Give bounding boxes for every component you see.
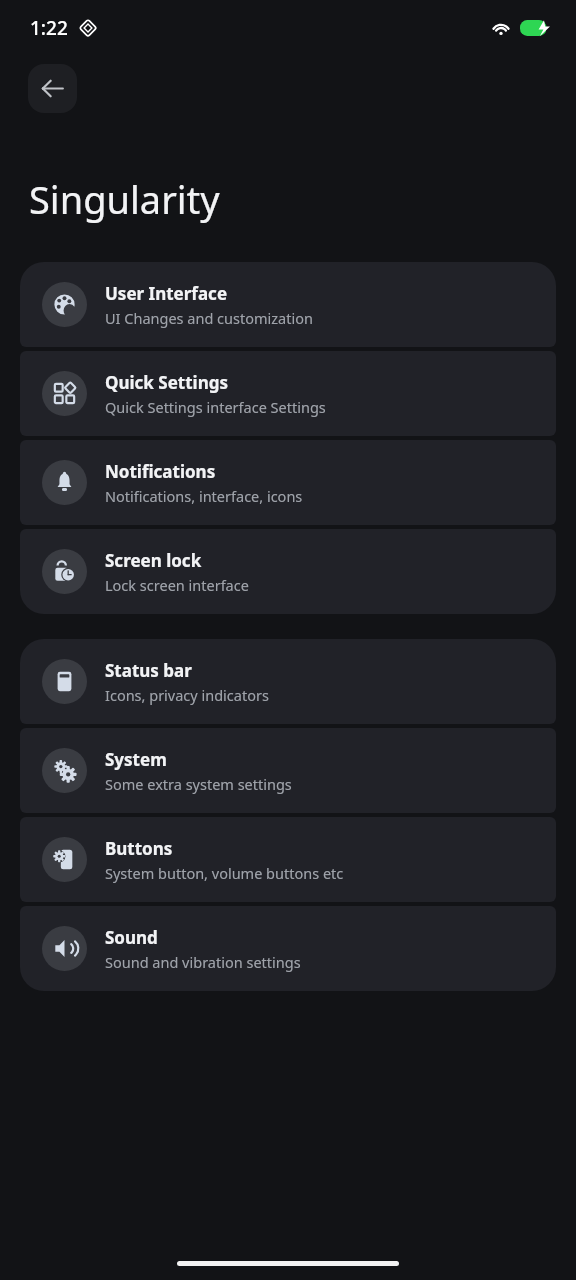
button[interactable]: Buttons bbox=[20, 817, 556, 902]
button[interactable]: System bbox=[20, 728, 556, 813]
staticText: Icons, privacy indicators bbox=[105, 685, 269, 705]
staticText: User Interface bbox=[105, 282, 228, 305]
staticText: Singularity bbox=[29, 173, 220, 225]
button[interactable]: User Interface bbox=[20, 262, 556, 347]
staticText: Notifications bbox=[105, 460, 216, 483]
staticText: Sound bbox=[105, 926, 158, 949]
button[interactable]: Status bar bbox=[20, 639, 556, 724]
staticText: Screen lock bbox=[105, 549, 202, 572]
staticText: Sound and vibration settings bbox=[105, 952, 301, 972]
button[interactable]: Screen lock bbox=[20, 529, 556, 614]
staticText: 1:22 bbox=[30, 15, 68, 41]
button[interactable]: Quick Settings bbox=[20, 351, 556, 436]
staticText: System button, volume buttons etc bbox=[105, 863, 344, 883]
button[interactable]: Back bbox=[28, 64, 77, 113]
button[interactable]: Sound bbox=[20, 906, 556, 991]
staticText: UI Changes and customization bbox=[105, 308, 313, 328]
staticText: Buttons bbox=[105, 837, 173, 860]
staticText: Quick Settings interface Settings bbox=[105, 397, 326, 417]
staticText: Status bar bbox=[105, 659, 192, 682]
staticText: Notifications, interface, icons bbox=[105, 486, 303, 506]
button[interactable]: Notifications bbox=[20, 440, 556, 525]
staticText: System bbox=[105, 748, 167, 771]
staticText: Lock screen interface bbox=[105, 575, 249, 595]
staticText: Some extra system settings bbox=[105, 774, 292, 794]
staticText: Quick Settings bbox=[105, 371, 228, 394]
